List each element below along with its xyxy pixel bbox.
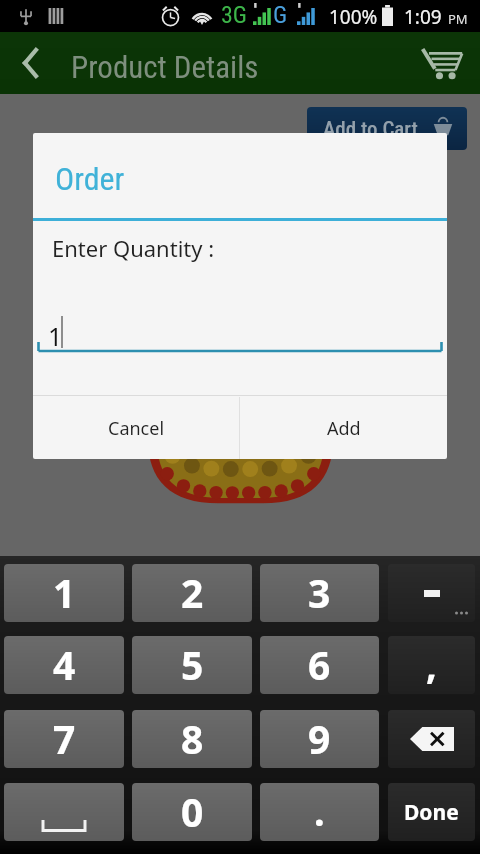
staticText: Enter Quantity : xyxy=(52,233,215,263)
button[interactable]: 2 xyxy=(132,564,252,622)
staticText: 3 xyxy=(308,566,331,619)
staticText: 1 xyxy=(48,319,63,353)
button[interactable]: Shopping cart xyxy=(412,32,472,94)
staticText: 9 xyxy=(308,712,331,765)
staticText: Product Details xyxy=(71,49,259,85)
button[interactable] xyxy=(388,564,475,622)
button[interactable]: . xyxy=(260,783,379,841)
staticText: G xyxy=(273,1,288,29)
staticText: Add xyxy=(327,416,361,441)
staticText: 3G xyxy=(221,1,248,29)
button[interactable]: 0 xyxy=(132,783,252,841)
staticText: 1:09 xyxy=(404,4,442,30)
staticText: PM xyxy=(448,10,468,28)
staticText: Done xyxy=(404,798,459,827)
button[interactable]: Back xyxy=(4,37,56,89)
staticText: Order xyxy=(55,160,125,198)
button[interactable]: Space xyxy=(4,783,124,841)
button[interactable]: Add to Cart xyxy=(307,107,467,150)
staticText: 7 xyxy=(53,712,76,765)
staticText: 6 xyxy=(308,638,331,691)
staticText: Cancel xyxy=(108,416,165,441)
staticText: 5 xyxy=(181,638,204,691)
staticText: 1 xyxy=(53,566,76,619)
button[interactable]: Done xyxy=(388,783,475,841)
button[interactable]: 5 xyxy=(132,636,252,694)
button[interactable]: 4 xyxy=(4,636,124,694)
staticText: Add to Cart xyxy=(323,117,418,142)
button[interactable]: 6 xyxy=(260,636,379,694)
staticText: , xyxy=(426,638,437,690)
button[interactable]: , xyxy=(388,636,475,694)
button[interactable]: Cancel xyxy=(33,397,239,459)
button[interactable]: 1 xyxy=(4,564,124,622)
button[interactable]: Delete xyxy=(388,710,475,768)
button[interactable]: 9 xyxy=(260,710,379,768)
staticText: 0 xyxy=(181,785,204,838)
staticText: 100% xyxy=(329,4,378,30)
button[interactable]: 3 xyxy=(260,564,379,622)
staticText: 8 xyxy=(181,712,204,765)
button[interactable]: 7 xyxy=(4,710,124,768)
staticText: . xyxy=(314,785,325,837)
button[interactable]: Add xyxy=(240,397,447,459)
staticText: 2 xyxy=(181,566,204,619)
staticText: 4 xyxy=(53,638,76,691)
button[interactable]: 8 xyxy=(132,710,252,768)
